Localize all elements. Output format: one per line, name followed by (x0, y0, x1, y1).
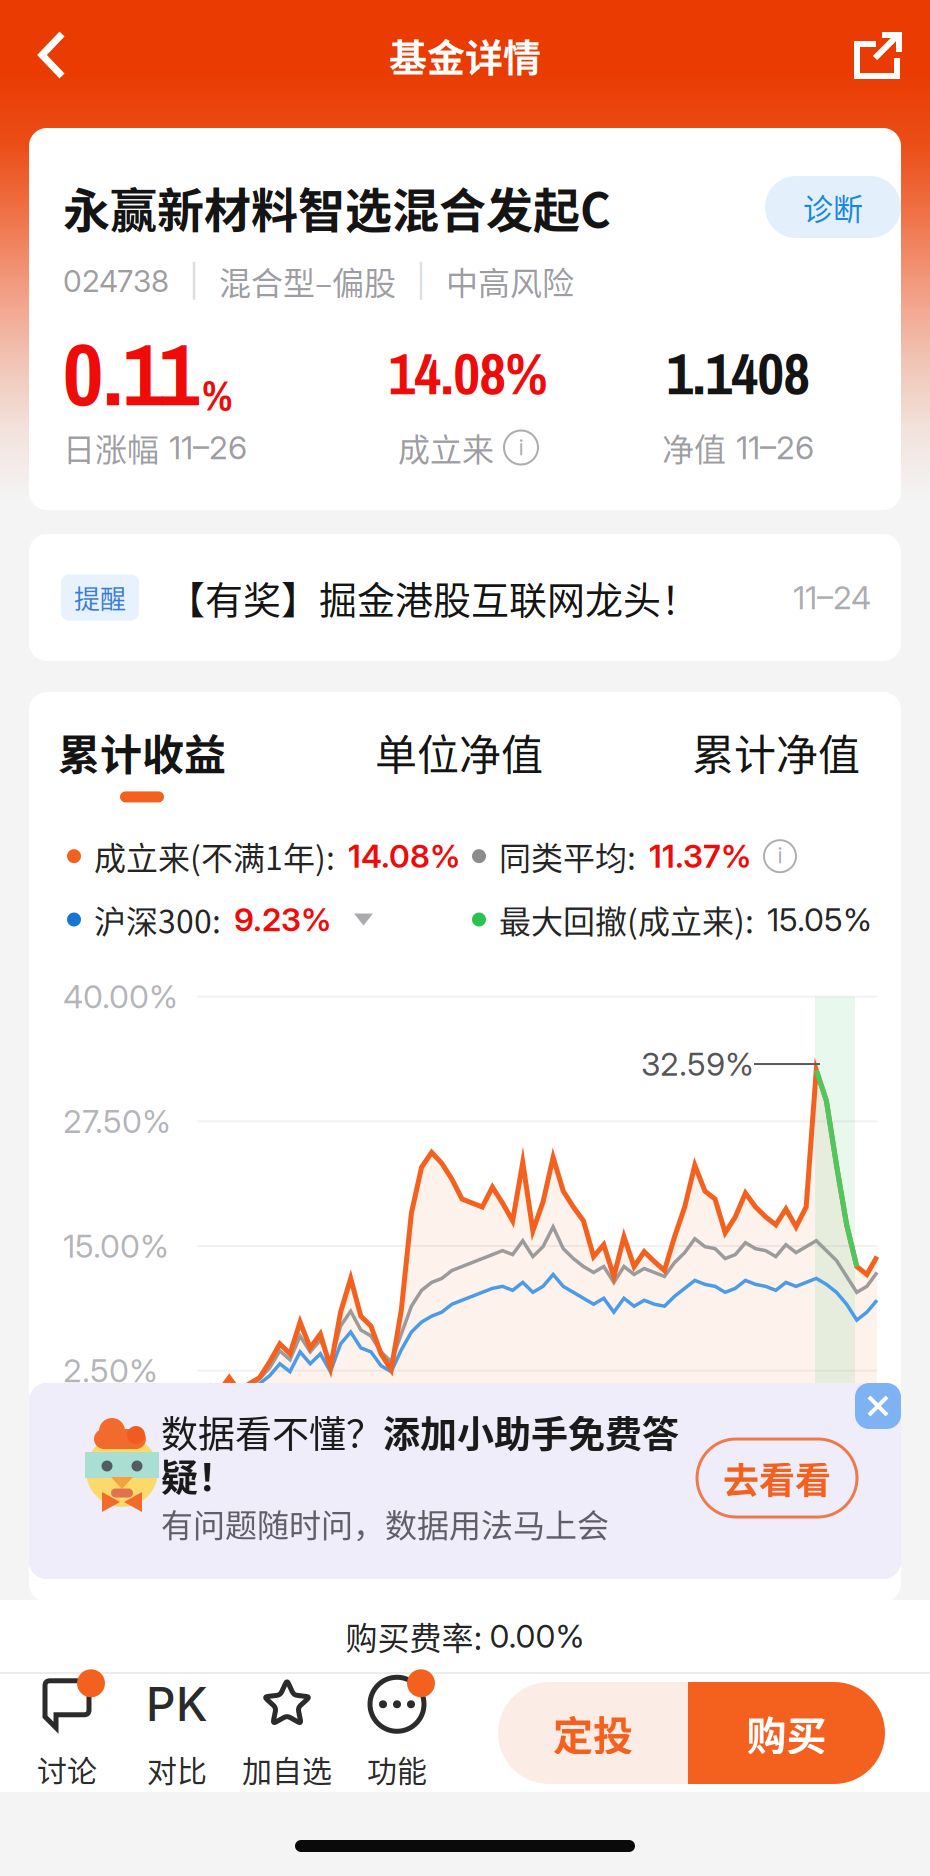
staticText: | (189, 262, 199, 300)
staticText: 讨论 (37, 1747, 97, 1791)
button[interactable]: 累计净值 (663, 716, 889, 808)
staticText: 0.00% (489, 1617, 584, 1655)
button[interactable]: 关闭 (855, 1383, 901, 1429)
staticText: 累计净值 (692, 722, 860, 782)
staticText: 11–24 (793, 578, 871, 617)
staticText: 11–26 (169, 428, 247, 467)
staticText: 27.50% (63, 1102, 171, 1141)
staticText: 32.59% (641, 1045, 754, 1083)
staticText: 14.08% (388, 334, 547, 412)
staticText: 1.1408 (666, 334, 809, 412)
button[interactable]: 提醒 (29, 534, 901, 661)
staticText: 成立来(不满1年): (94, 833, 335, 879)
staticText: 基金详情 (389, 27, 541, 82)
staticText: i (777, 843, 782, 868)
button[interactable]: PK (122, 1674, 232, 1792)
staticText: | (416, 262, 426, 300)
staticText: 定投 (553, 1704, 633, 1762)
button[interactable]: 去看看 (697, 1439, 857, 1517)
staticText: 成立来 (398, 424, 494, 471)
staticText: 疑！ (161, 1449, 235, 1502)
staticText: 15.00% (63, 1227, 169, 1265)
staticText: 9.23% (234, 900, 331, 939)
staticText: 加自选 (242, 1747, 332, 1791)
staticText: 14.08% (348, 837, 460, 875)
button[interactable]: 购买 (688, 1682, 885, 1784)
staticText: % (202, 367, 233, 424)
staticText: 提醒 (74, 579, 126, 616)
staticText: 024738 (63, 263, 169, 299)
staticText: 中高风险 (446, 258, 574, 304)
staticText: 混合型–偏股 (219, 258, 396, 304)
staticText: i (518, 433, 523, 461)
staticText: 15.05% (767, 900, 872, 939)
staticText: 有问题随时问，数据用法马上会 (161, 1500, 609, 1546)
staticText: 累计收益 (58, 722, 226, 782)
staticText: 添加小助手免费答 (383, 1405, 679, 1459)
staticText: 数据看不懂？ (161, 1405, 383, 1459)
staticText: 永赢新材料智选混合发起C (63, 173, 611, 241)
staticText: 最大回撤(成立来): (499, 896, 754, 943)
staticText: 同类平均: (499, 833, 636, 879)
button[interactable]: 累计收益 (29, 716, 255, 808)
staticText: 0.11 (63, 314, 199, 433)
staticText: 11–26 (736, 428, 814, 467)
staticText: 单位净值 (375, 722, 543, 782)
button[interactable]: 返回 (0, 0, 104, 110)
staticText: 日涨幅 (63, 424, 159, 471)
staticText: 40.00% (63, 977, 178, 1016)
staticText: 对比 (147, 1747, 207, 1791)
staticText: 净值 (662, 424, 726, 471)
staticText: 功能 (367, 1747, 427, 1791)
button[interactable]: 定投 (498, 1682, 688, 1784)
staticText: 购买费率: (345, 1613, 489, 1659)
staticText: 去看看 (723, 1452, 831, 1504)
staticText: 购买 (746, 1704, 826, 1762)
staticText: 2.50% (63, 1351, 158, 1390)
staticText: 11.37% (649, 837, 751, 875)
button[interactable]: 功能 (342, 1674, 452, 1792)
button[interactable]: 分享 (826, 0, 930, 110)
staticText: 沪深300: (94, 896, 221, 943)
staticText: 诊断 (803, 185, 863, 229)
button[interactable]: 单位净值 (346, 716, 572, 808)
staticText: 【有奖】掘金港股互联网龙头！ (167, 570, 699, 625)
staticText: PK (146, 1676, 208, 1732)
button[interactable]: 讨论 (12, 1674, 122, 1792)
button[interactable]: 诊断 (765, 176, 901, 238)
button[interactable]: 加自选 (232, 1674, 342, 1792)
